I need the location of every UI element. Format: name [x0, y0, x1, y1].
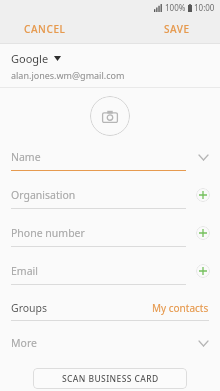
staticText: More [11, 336, 196, 350]
other: Expand [196, 336, 210, 350]
button[interactable]: Groups [0, 296, 220, 331]
button[interactable]: Google [0, 44, 220, 87]
staticText: Email [11, 264, 196, 278]
button[interactable]: SAVE [158, 18, 196, 40]
staticText: Phone number [11, 226, 196, 240]
button[interactable]: Add photo [90, 96, 130, 136]
staticText: Groups [11, 301, 152, 315]
staticText: My contacts [152, 301, 209, 315]
button[interactable]: Add [196, 188, 210, 202]
button[interactable]: CANCEL [18, 18, 72, 40]
staticText: alan.jones.wm@gmail.com [11, 69, 125, 81]
button[interactable]: Phone number [0, 220, 220, 258]
staticText: 100% [165, 2, 186, 13]
button[interactable]: Name [0, 144, 220, 182]
staticText: CANCEL [24, 22, 66, 36]
button[interactable]: SCAN BUSINESS CARD [33, 368, 187, 389]
staticText: SCAN BUSINESS CARD [62, 373, 159, 385]
staticText: Google [11, 51, 49, 66]
button[interactable]: Add [196, 264, 210, 278]
staticText: Name [11, 150, 196, 164]
staticText: 10:00 [194, 2, 215, 13]
button[interactable]: Add [196, 226, 210, 240]
button[interactable]: More [0, 331, 220, 355]
other: Expand [196, 150, 210, 164]
button[interactable]: Email [0, 258, 220, 296]
staticText: Organisation [11, 188, 196, 202]
staticText: SAVE [164, 22, 190, 36]
button[interactable]: Organisation [0, 182, 220, 220]
